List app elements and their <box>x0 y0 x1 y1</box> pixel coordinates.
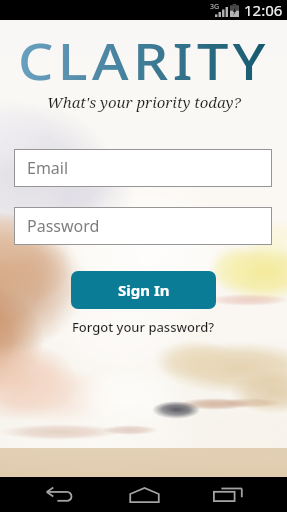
button[interactable]: Sign In <box>71 271 216 309</box>
staticText: Password <box>27 215 100 237</box>
staticText: Sign In <box>118 280 170 300</box>
staticText: CLARITY <box>18 27 270 95</box>
button[interactable]: Home <box>118 477 170 512</box>
button[interactable]: Password <box>14 207 272 245</box>
staticText: Email <box>27 157 69 179</box>
staticText: 3G <box>210 2 220 12</box>
staticText: 12:06 <box>244 0 283 20</box>
button[interactable]: Recent apps <box>202 477 254 512</box>
button[interactable]: Forgot your password? <box>72 318 215 336</box>
button[interactable]: Email <box>14 149 272 187</box>
staticText: What's your priority today? <box>47 92 241 112</box>
button[interactable]: Back <box>33 477 85 512</box>
